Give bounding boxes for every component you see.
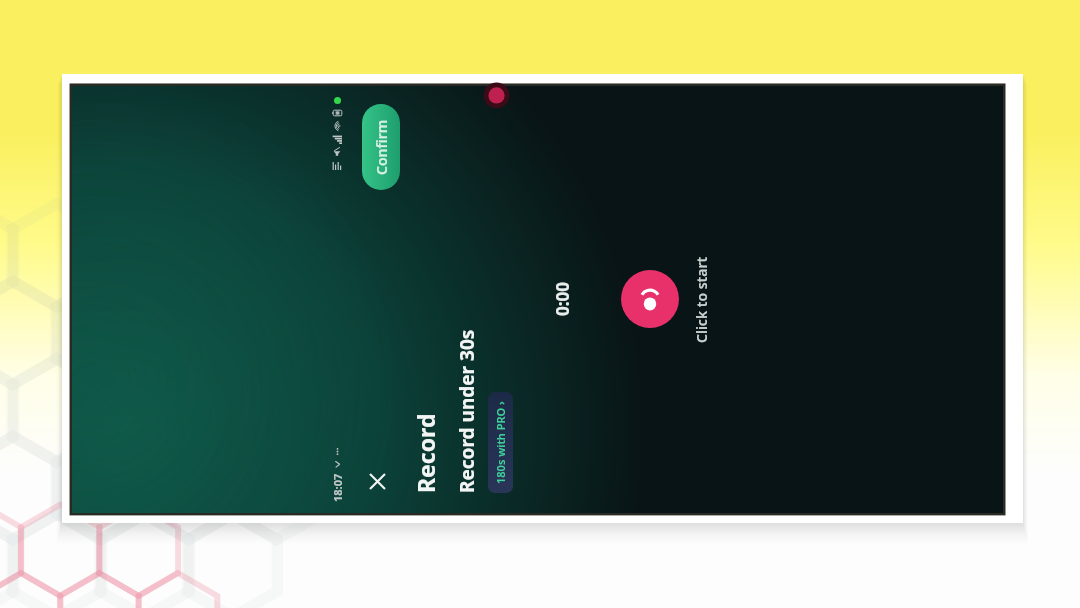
staticText: Confirm xyxy=(372,119,391,175)
button[interactable]: Start recording xyxy=(621,270,679,328)
button[interactable]: Confirm xyxy=(362,104,400,190)
staticText: Record under 30s xyxy=(454,329,480,493)
staticText: 18:07 xyxy=(330,473,345,502)
staticText: 0:00 xyxy=(551,282,574,316)
staticText: Record xyxy=(410,413,441,493)
staticText: Click to start xyxy=(692,256,711,343)
button[interactable]: Close xyxy=(360,465,394,499)
staticText: 180s with PRO › xyxy=(493,401,508,484)
button[interactable]: 180s with PRO › xyxy=(488,392,513,493)
